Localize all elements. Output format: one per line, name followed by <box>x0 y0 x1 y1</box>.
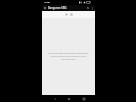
staticText: Bangunan SBG <box>48 6 67 10</box>
button[interactable]: Home <box>66 96 71 101</box>
button[interactable]: More options <box>90 6 94 10</box>
button[interactable]: Search <box>86 6 90 10</box>
button[interactable]: Zoom in <box>65 13 68 16</box>
staticText: 10:45 <box>44 1 50 4</box>
button[interactable]: Back <box>52 96 57 101</box>
button[interactable]: List view <box>70 13 73 16</box>
staticText: Tidak ada data yang dapat ditampilkan. S… <box>46 52 91 61</box>
button[interactable]: Open navigation drawer <box>43 6 47 10</box>
button[interactable]: Recent apps <box>81 96 86 101</box>
